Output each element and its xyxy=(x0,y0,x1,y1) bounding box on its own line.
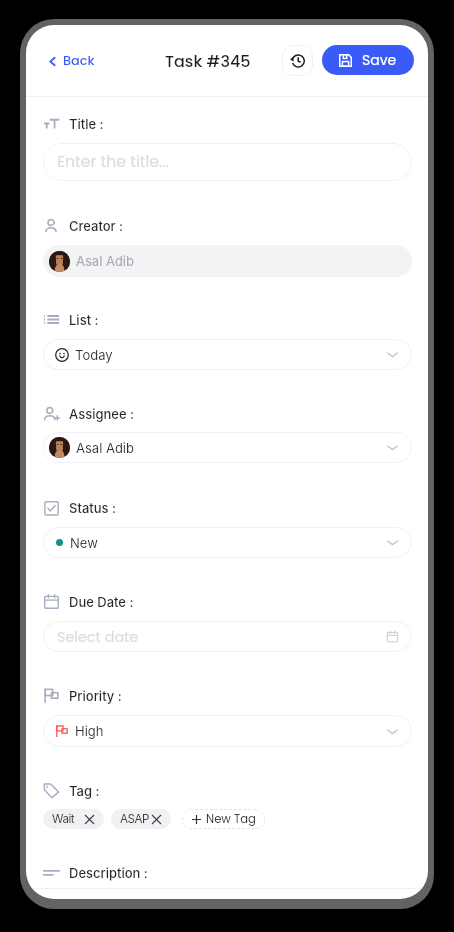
staticText: Back xyxy=(63,52,95,70)
button[interactable]: Wait xyxy=(43,809,104,829)
staticText: Priority : xyxy=(69,688,122,704)
staticText: Description : xyxy=(69,865,148,881)
button[interactable]: Select date xyxy=(43,621,412,652)
button[interactable]: History xyxy=(282,45,313,76)
staticText: New Tag xyxy=(206,811,256,827)
staticText: New xyxy=(70,535,98,551)
staticText: Assignee : xyxy=(69,406,134,422)
button[interactable]: Asal Adib xyxy=(43,432,412,463)
staticText: ASAP xyxy=(120,812,150,826)
staticText: Due Date : xyxy=(69,594,134,610)
staticText: Status : xyxy=(69,500,116,516)
button[interactable]: New xyxy=(43,527,412,558)
staticText: Enter the title... xyxy=(57,151,169,173)
button[interactable]: Today xyxy=(43,339,412,370)
button[interactable]: New Tag xyxy=(182,809,265,829)
staticText: High xyxy=(75,723,104,739)
button[interactable]: ASAP xyxy=(111,809,171,829)
staticText: Task #345 xyxy=(165,50,251,72)
button[interactable]: Enter the title... xyxy=(43,143,412,181)
staticText: Today xyxy=(75,347,113,363)
staticText: Asal Adib xyxy=(76,253,134,269)
button[interactable]: Back xyxy=(43,47,99,75)
staticText: Creator : xyxy=(69,218,124,234)
staticText: Title : xyxy=(69,116,104,132)
staticText: Save xyxy=(362,50,397,70)
staticText: Select date xyxy=(57,627,139,647)
button[interactable]: Save xyxy=(322,45,414,75)
button[interactable]: Asal Adib xyxy=(43,245,412,277)
button[interactable]: High xyxy=(43,715,412,747)
staticText: Wait xyxy=(52,812,75,826)
staticText: Asal Adib xyxy=(76,440,134,456)
staticText: List : xyxy=(69,312,99,328)
staticText: Tag : xyxy=(69,783,100,799)
